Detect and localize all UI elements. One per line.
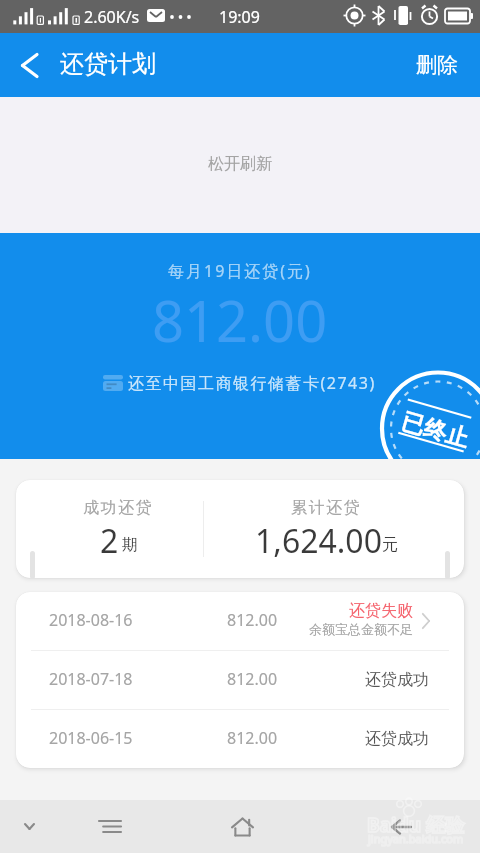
staticText: 已终止 [398,407,472,454]
staticText: jingyan.baidu.com [368,831,464,846]
staticText: 812.00 [227,727,278,749]
staticText: 成功还贷 [83,498,154,518]
staticText: 19:09 [219,6,260,28]
other: Details [422,613,430,629]
staticText: Baidu 经验 [367,812,464,838]
staticText: 2018-07-18 [49,668,133,690]
staticText: 还贷计划 [60,49,156,79]
staticText: 2018-06-15 [49,727,133,749]
staticText: 余额宝总金额不足 [309,621,413,637]
staticText: 812.00 [227,609,278,631]
staticText: 812.00 [152,282,328,358]
staticText: 2.60K/s [84,6,140,28]
button[interactable]: 2018-06-15 [16,710,464,768]
staticText: 812.00 [227,668,278,690]
button[interactable]: 2018-07-18 [16,651,464,709]
staticText: 还贷失败 [349,601,413,621]
staticText: 2018-08-16 [49,609,133,631]
staticText: 还贷成功 [365,729,429,749]
staticText: 累计还贷 [291,498,362,518]
staticText: 2 [100,519,119,563]
staticText: 还至中国工商银行储蓄卡(2743) [128,372,376,394]
button[interactable]: 2018-08-16 [16,592,464,650]
staticText: 松开刷新 [208,154,272,174]
button[interactable]: Back [322,800,480,853]
staticText: 期 [122,535,138,555]
staticText: 元 [382,535,398,555]
staticText: 1,624.00 [255,519,382,563]
staticText: 删除 [416,52,458,78]
button[interactable]: Hide keyboard [0,800,58,853]
button[interactable]: 删除 [394,33,480,97]
button[interactable]: Home [162,800,322,853]
button[interactable]: Menu [58,800,162,853]
staticText: 每月19日还贷(元) [168,260,312,282]
button[interactable]: Back [0,33,58,97]
staticText: 还贷成功 [365,670,429,690]
